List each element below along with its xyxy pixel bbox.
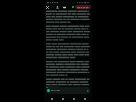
- button[interactable]: [75, 5, 91, 9]
- button[interactable]: Account: [55, 5, 60, 10]
- button[interactable]: Profile: [81, 95, 88, 102]
- button[interactable]: Library: [70, 95, 77, 102]
- button[interactable]: Close: [45, 5, 50, 10]
- button[interactable]: Explore: [59, 95, 66, 102]
- button[interactable]: Chats: [62, 5, 67, 10]
- button[interactable]: Send: [46, 87, 90, 94]
- button[interactable]: Send: [86, 89, 89, 92]
- button[interactable]: Home: [48, 95, 55, 102]
